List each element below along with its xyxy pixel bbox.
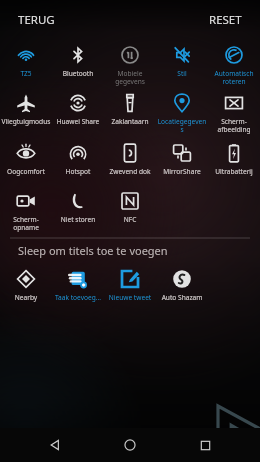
staticText: Locatiegegevens <box>157 117 207 134</box>
button[interactable]: Hotspot <box>52 138 104 186</box>
other: Locatiegegevens <box>171 92 193 114</box>
staticText: NFC <box>105 215 155 224</box>
other: Nearby <box>15 268 37 290</box>
staticText: MirrorShare <box>157 167 207 176</box>
staticText: Bluetooth <box>53 69 103 78</box>
staticText: Nieuwe tweet <box>105 293 155 302</box>
staticText: Huawei Share <box>53 117 103 126</box>
other: Scherm-afbeelding <box>223 92 245 114</box>
other: Ultrabatterij <box>223 142 245 164</box>
button[interactable]: TZ5 <box>0 40 52 88</box>
staticText: Niet storen <box>53 215 103 224</box>
staticText: Scherm-opname <box>1 215 51 232</box>
other: Mobiele gegevens <box>119 44 141 66</box>
other: Auto Shazam <box>171 268 193 290</box>
button[interactable]: Nieuwe tweet <box>104 264 156 308</box>
button[interactable]: NFC <box>104 186 156 234</box>
staticText: Stil <box>157 69 207 78</box>
button[interactable]: Oogcomfort <box>0 138 52 186</box>
other: Automatisch roteren <box>223 44 245 66</box>
other: Zaklantaarn <box>119 92 141 114</box>
staticText: Zaklantaarn <box>105 117 155 126</box>
staticText: Nearby <box>1 293 51 302</box>
button[interactable]: Mobiele gegevens <box>104 40 156 88</box>
other: Hotspot <box>67 142 89 164</box>
button[interactable]: Scherm-afbeelding <box>208 88 260 138</box>
button[interactable]: MirrorShare <box>156 138 208 186</box>
staticText: Sleep om titels toe te voegen <box>18 243 168 258</box>
other: Bluetooth <box>67 44 89 66</box>
button[interactable]: RESET <box>201 6 250 34</box>
button[interactable]: Auto Shazam <box>156 264 208 308</box>
other: Scherm-opname <box>15 190 37 212</box>
other: Oogcomfort <box>15 142 37 164</box>
button[interactable]: Locatiegegevens <box>156 88 208 138</box>
other: Taak toevoeg... <box>67 268 89 290</box>
other: TZ5 <box>15 44 37 66</box>
staticText: RESET <box>209 12 242 28</box>
other: Stil <box>171 44 193 66</box>
other: Niet storen <box>67 190 89 212</box>
staticText: Hotspot <box>53 167 103 176</box>
button[interactable]: Zwevend dok <box>104 138 156 186</box>
staticText: Taak toevoeg... <box>53 293 103 302</box>
button[interactable]: Taak toevoeg... <box>52 264 104 308</box>
other: Vliegtuigmodus <box>15 92 37 114</box>
other: NFC <box>119 190 141 212</box>
staticText: TERUG <box>18 12 55 28</box>
button[interactable]: Ultrabatterij <box>208 138 260 186</box>
button[interactable]: Huawei Share <box>52 88 104 138</box>
staticText: TZ5 <box>1 69 51 78</box>
button[interactable]: TERUG <box>10 6 63 34</box>
staticText: Automatisch roteren <box>209 69 259 86</box>
button[interactable]: Stil <box>156 40 208 88</box>
button[interactable]: Scherm-opname <box>0 186 52 234</box>
button[interactable]: Sleep om titels toe te voegen <box>0 239 260 261</box>
button[interactable]: Nearby <box>0 264 52 308</box>
button[interactable]: Niet storen <box>52 186 104 234</box>
button[interactable]: Home <box>110 428 150 462</box>
staticText: Mobiele gegevens <box>105 69 155 86</box>
staticText: Auto Shazam <box>157 293 207 302</box>
button[interactable]: Zaklantaarn <box>104 88 156 138</box>
button[interactable]: Bluetooth <box>52 40 104 88</box>
staticText: Zwevend dok <box>105 167 155 176</box>
staticText: Oogcomfort <box>1 167 51 176</box>
other: Nieuwe tweet <box>119 268 141 290</box>
button[interactable]: Vliegtuigmodus <box>0 88 52 138</box>
staticText: Vliegtuigmodus <box>1 117 51 126</box>
other: Huawei Share <box>67 92 89 114</box>
button[interactable]: Recents <box>185 428 225 462</box>
staticText: Scherm-afbeelding <box>209 117 259 134</box>
staticText: Ultrabatterij <box>209 167 259 176</box>
other: MirrorShare <box>171 142 193 164</box>
button[interactable]: Back <box>35 428 75 462</box>
other: Zwevend dok <box>119 142 141 164</box>
button[interactable]: Automatisch roteren <box>208 40 260 88</box>
